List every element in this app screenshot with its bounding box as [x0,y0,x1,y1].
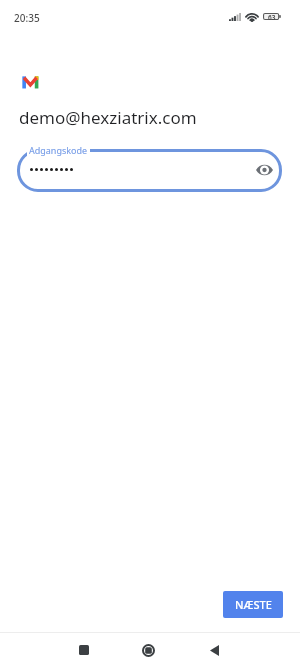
button[interactable]: Home [126,632,170,668]
button[interactable]: Back [192,632,236,668]
button[interactable]: Recent apps [62,632,106,668]
button[interactable] [17,149,282,192]
staticText: NÆSTE [235,597,272,612]
staticText: Adgangskode [29,144,88,156]
button[interactable]: NÆSTE [223,591,283,618]
staticText: 63 [268,13,276,20]
button[interactable]: Show password [252,159,276,183]
staticText: 20:35 [14,11,40,25]
staticText: demo@hexziatrix.com [19,106,197,129]
